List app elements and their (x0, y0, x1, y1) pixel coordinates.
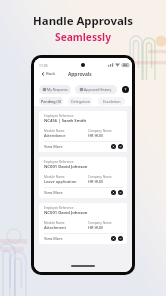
staticText: My Requests (47, 87, 68, 92)
button[interactable]: Reject (111, 144, 116, 149)
button[interactable]: View More (44, 144, 63, 149)
button[interactable]: Employee Reference (39, 111, 127, 152)
staticText: Approval History (84, 87, 112, 92)
button[interactable]: Approve (118, 236, 123, 241)
staticText: 11:05 (39, 63, 48, 68)
staticText: Module Name (44, 175, 65, 179)
staticText: HR HUB (88, 133, 103, 138)
staticText: Handle Approvals (33, 13, 133, 29)
staticText: Employee Reference (44, 206, 74, 210)
staticText: NC456 | Sarah Smith (44, 118, 87, 124)
button[interactable]: Approve (118, 144, 123, 149)
staticText: Seamlessly (55, 30, 111, 44)
staticText: HR HUB (88, 179, 103, 184)
staticText: Employee Reference (44, 160, 74, 164)
button[interactable]: View More (44, 190, 63, 195)
staticText: Company Name (88, 175, 112, 179)
button[interactable]: Pending (3) (39, 97, 63, 105)
staticText: Escalation (103, 99, 121, 104)
button[interactable]: Back (40, 70, 57, 78)
button[interactable]: Escalation (98, 97, 125, 105)
staticText: Leave application (44, 179, 77, 184)
button[interactable]: Filter (122, 86, 129, 93)
staticText: Attendance (44, 133, 66, 138)
staticText: Delegation (71, 99, 90, 104)
staticText: NC001 David Johnson (44, 164, 88, 170)
button[interactable]: Delegation (68, 97, 92, 105)
button[interactable]: Reject (111, 190, 116, 195)
staticText: Employee Reference (44, 114, 74, 118)
staticText: Back (46, 71, 56, 77)
button[interactable]: Approval History (75, 85, 117, 94)
staticText: Company Name (88, 221, 112, 225)
staticText: Company Name (88, 129, 112, 133)
button[interactable]: My Requests (39, 85, 71, 94)
staticText: HR HUB (88, 225, 103, 230)
staticText: Approvals (68, 71, 92, 78)
staticText: Module Name (44, 129, 65, 133)
button[interactable]: Employee Reference (39, 203, 127, 244)
staticText: Pending (3) (41, 99, 61, 104)
button[interactable]: Approve (118, 190, 123, 195)
button[interactable]: Employee Reference (39, 157, 127, 198)
staticText: Module Name (44, 221, 65, 225)
button[interactable]: Reject (111, 236, 116, 241)
button[interactable]: View More (44, 236, 63, 241)
staticText: NC001 David Johnson (44, 210, 88, 216)
staticText: Attachment (44, 225, 66, 230)
